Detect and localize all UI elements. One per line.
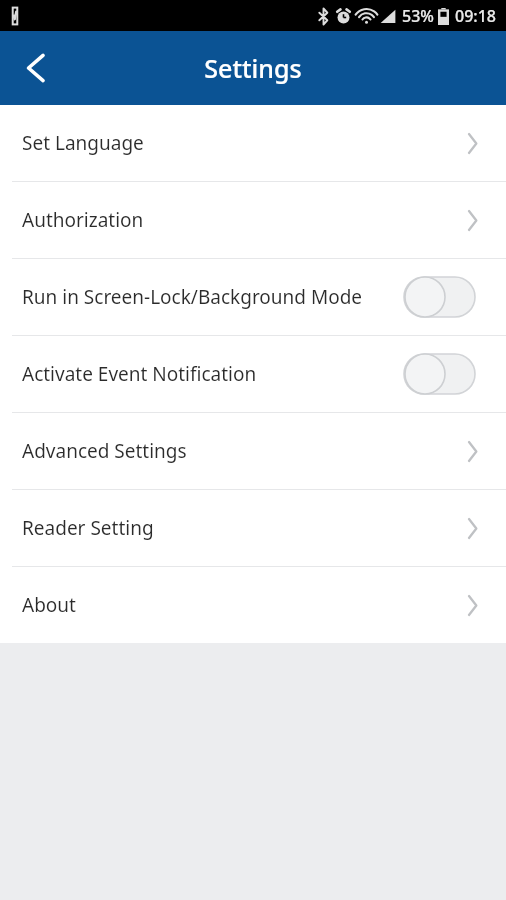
staticText: Run in Screen-Lock/Background Mode: [22, 284, 398, 310]
button[interactable]: About: [0, 567, 506, 643]
button[interactable]: Advanced Settings: [0, 413, 506, 489]
staticText: 53%: [402, 5, 434, 27]
staticText: Advanced Settings: [22, 438, 187, 464]
staticText: Settings: [204, 51, 302, 85]
staticText: 09:18: [455, 5, 496, 27]
button[interactable]: Back: [0, 31, 72, 105]
staticText: Reader Setting: [22, 515, 154, 541]
button[interactable]: Authorization: [0, 182, 506, 258]
other: Toggle Activate Event Notification: [404, 353, 475, 395]
staticText: Authorization: [22, 207, 144, 233]
staticText: About: [22, 592, 76, 618]
button[interactable]: Set Language: [0, 105, 506, 181]
button[interactable]: Activate Event Notification: [0, 336, 506, 412]
button[interactable]: Reader Setting: [0, 490, 506, 566]
button[interactable]: Run in Screen-Lock/Background Mode: [0, 259, 506, 335]
staticText: Activate Event Notification: [22, 361, 398, 387]
other: Toggle Run in Screen-Lock/Background Mod…: [404, 276, 475, 318]
staticText: Set Language: [22, 130, 144, 156]
